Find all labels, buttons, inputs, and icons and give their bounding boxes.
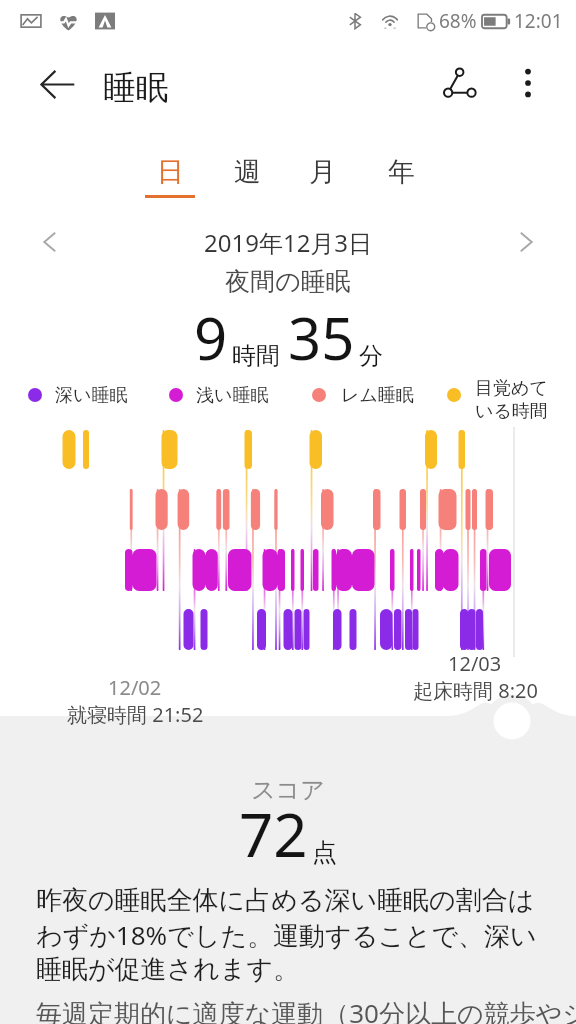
staticText: 点 — [312, 837, 337, 868]
staticText: 日 — [157, 155, 184, 189]
staticText: 毎週定期的に適度な運動（30分以上の競歩やジョ — [36, 995, 576, 1024]
button[interactable]: Previous day — [28, 220, 72, 264]
staticText: スコア — [0, 775, 576, 805]
staticText: 68% — [439, 8, 477, 34]
button[interactable]: Share — [432, 55, 488, 111]
button[interactable]: 年 — [369, 155, 433, 213]
staticText: 年 — [388, 155, 415, 189]
staticText: 72 — [239, 793, 308, 875]
button[interactable]: 週 — [215, 155, 279, 213]
staticText: 浅い睡眠 — [196, 384, 269, 407]
staticText: 分 — [359, 341, 383, 371]
button[interactable]: 日 — [138, 155, 202, 213]
button[interactable]: Next day — [504, 220, 548, 264]
staticText: 夜間の睡眠 — [0, 266, 576, 297]
button[interactable]: More options — [500, 55, 556, 111]
staticText: 12:01 — [514, 8, 563, 34]
staticText: 12/02 — [108, 674, 162, 701]
staticText: わずか18%でした。運動することで、深い — [36, 917, 537, 953]
staticText: 深い睡眠 — [55, 384, 128, 407]
staticText: 昨夜の睡眠全体に占める深い睡眠の割合は — [36, 884, 535, 917]
button[interactable]: Back — [29, 56, 85, 112]
staticText: 2019年12月3日 — [204, 226, 373, 259]
staticText: いる時間 — [475, 400, 548, 423]
staticText: 12/03 — [448, 650, 502, 677]
staticText: 就寝時間 21:52 — [67, 701, 204, 728]
staticText: 睡眠が促進されます。 — [36, 953, 300, 986]
button[interactable]: 月 — [290, 155, 354, 213]
staticText: 起床時間 8:20 — [413, 677, 538, 704]
staticText: レム睡眠 — [341, 384, 414, 407]
staticText: 35 — [288, 298, 355, 377]
staticText: 目覚めて — [475, 377, 548, 400]
staticText: 週 — [234, 155, 261, 189]
staticText: 月 — [309, 155, 336, 189]
staticText: 睡眠 — [103, 67, 169, 109]
staticText: 9 — [194, 298, 228, 377]
staticText: 時間 — [232, 341, 280, 371]
